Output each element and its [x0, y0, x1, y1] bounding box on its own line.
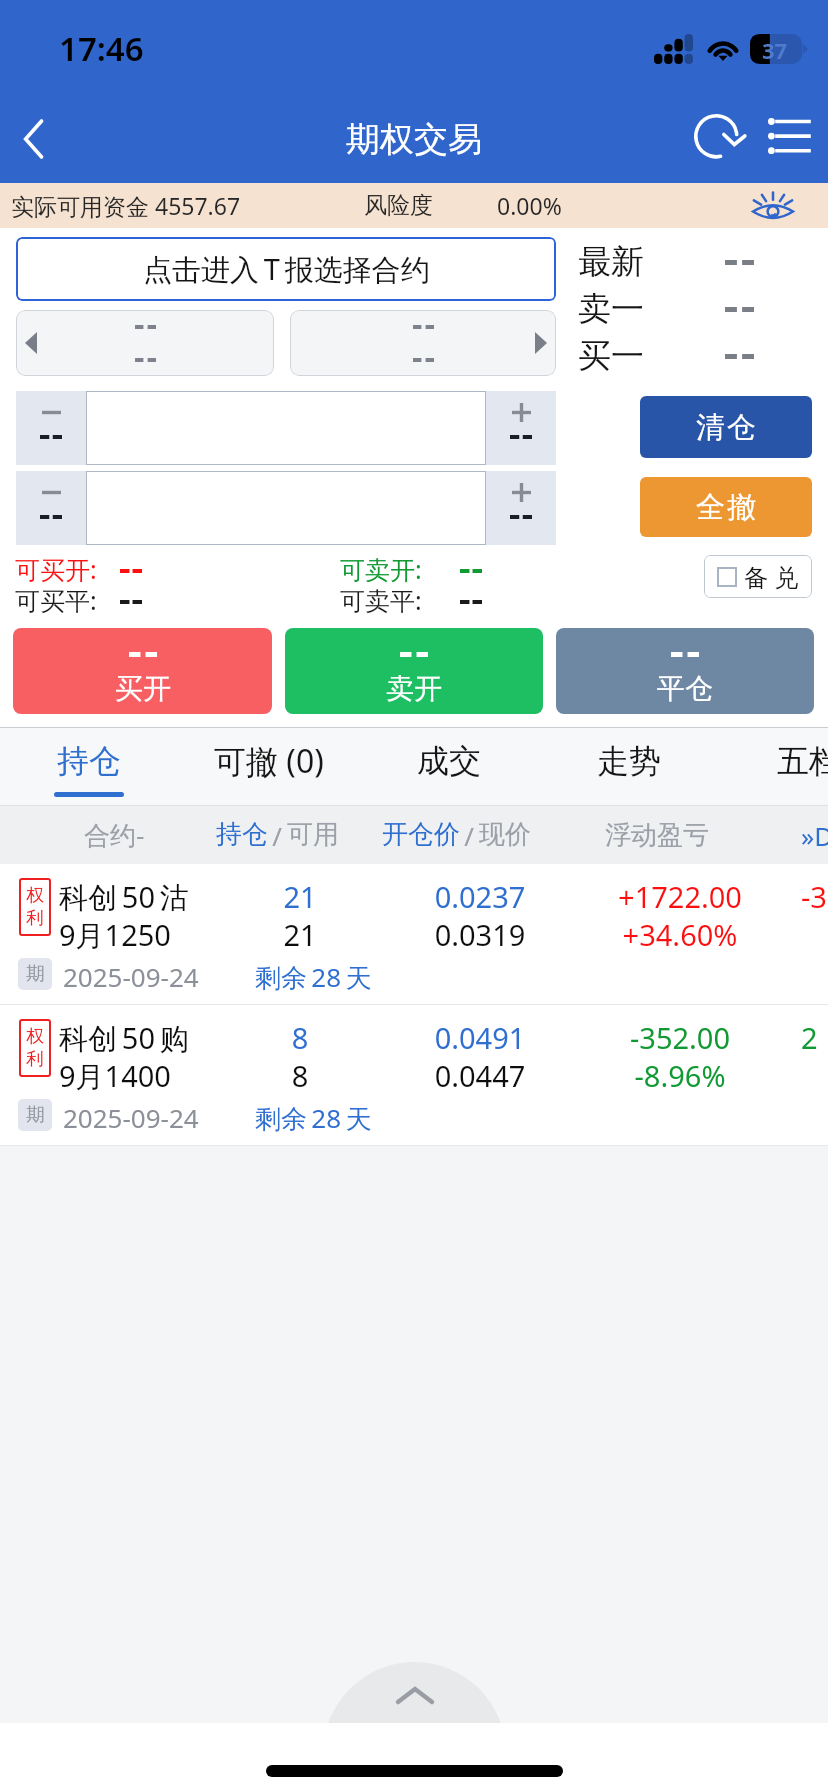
staticText: 科创 50 沽: [59, 877, 189, 917]
staticText: 0.0447: [370, 1056, 590, 1095]
button[interactable]: 平仓: [556, 628, 814, 714]
button[interactable]: Decrease: [16, 471, 86, 545]
staticText: 开仓价: [382, 818, 460, 851]
staticText: +34.60%: [570, 915, 790, 954]
button[interactable]: [16, 310, 274, 376]
staticText: 风险度: [364, 191, 433, 220]
staticText: -8.96%: [570, 1056, 790, 1095]
staticText: 买开: [115, 671, 171, 706]
staticText: 平仓: [657, 671, 713, 706]
staticText: 利: [26, 907, 44, 930]
staticText: 2025-09-24: [63, 1100, 199, 1135]
staticText: 0.0237: [370, 877, 590, 916]
button[interactable]: Expand panel: [323, 1662, 506, 1792]
button[interactable]: [86, 471, 486, 545]
staticText: 可买平:: [15, 583, 97, 617]
staticText: /: [268, 818, 287, 853]
button[interactable]: 持仓: [0, 727, 179, 806]
staticText: +1722.00: [570, 877, 790, 916]
button[interactable]: 走势: [539, 727, 719, 806]
staticText: /: [460, 818, 479, 853]
staticText: 权: [26, 884, 44, 907]
button[interactable]: 备 兑: [704, 555, 812, 598]
staticText: 全撤: [695, 489, 757, 526]
staticText: 9月1250: [59, 915, 171, 955]
staticText: 合约-: [84, 817, 145, 853]
staticText: 走势: [597, 741, 661, 781]
staticText: 0.00%: [497, 190, 562, 221]
button[interactable]: [290, 310, 556, 376]
staticText: 可买开:: [15, 552, 97, 586]
staticText: 可撤 (0): [214, 739, 324, 783]
staticText: 8: [190, 1056, 410, 1095]
staticText: 期权交易: [346, 118, 482, 161]
button[interactable]: 清仓: [640, 396, 812, 458]
staticText: 卖一: [578, 288, 644, 330]
button[interactable]: 买开: [13, 628, 272, 714]
staticText: 17:46: [59, 26, 144, 71]
staticText: 37: [762, 35, 788, 65]
button[interactable]: 卖开: [285, 628, 543, 714]
button[interactable]: [86, 391, 486, 465]
button[interactable]: 成交: [359, 727, 539, 806]
button[interactable]: Toggle balance visibility: [748, 188, 798, 226]
staticText: 五档: [777, 741, 828, 781]
button[interactable]: Increase: [486, 471, 556, 545]
staticText: 持仓: [57, 741, 121, 781]
staticText: 剩余 28 天: [255, 959, 372, 995]
button[interactable]: Back: [0, 95, 76, 183]
staticText: 21: [190, 877, 410, 916]
staticText: -352.00: [570, 1018, 790, 1057]
button[interactable]: 权: [0, 864, 828, 1005]
staticText: 9月1400: [59, 1056, 171, 1096]
staticText: 卖开: [386, 671, 442, 706]
staticText: 0.0319: [370, 915, 590, 954]
staticText: 剩余 28 天: [255, 1100, 372, 1136]
staticText: 最新: [578, 241, 644, 283]
staticText: 权: [26, 1025, 44, 1048]
staticText: 期: [26, 962, 45, 986]
staticText: 期: [26, 1103, 45, 1127]
staticText: 0.0491: [370, 1018, 590, 1057]
staticText: 浮动盈亏: [605, 819, 709, 852]
button[interactable]: 全撤: [640, 477, 812, 537]
staticText: 备 兑: [744, 560, 799, 593]
button[interactable]: 可撤 (0): [179, 727, 359, 806]
button[interactable]: Decrease: [16, 391, 86, 465]
staticText: 2025-09-24: [63, 959, 199, 994]
button[interactable]: 权: [0, 1005, 828, 1146]
button[interactable]: Menu: [752, 105, 828, 181]
button[interactable]: 点击进入 T 报选择合约: [16, 237, 556, 301]
staticText: 买一: [578, 335, 644, 377]
staticText: 科创 50 购: [59, 1018, 189, 1058]
staticText: 清仓: [695, 409, 757, 446]
staticText: 可卖平:: [340, 583, 422, 617]
button[interactable]: Increase: [486, 391, 556, 465]
staticText: 持仓: [216, 818, 268, 851]
staticText: 点击进入 T 报选择合约: [143, 249, 430, 289]
staticText: »D: [801, 818, 828, 853]
staticText: 8: [190, 1018, 410, 1057]
button[interactable]: Refresh: [684, 106, 756, 178]
staticText: 实际可用资金 4557.67: [11, 190, 241, 221]
staticText: 可卖开:: [340, 552, 422, 586]
button[interactable]: 五档: [719, 727, 828, 806]
staticText: -3: [801, 877, 827, 916]
staticText: 利: [26, 1048, 44, 1071]
staticText: 21: [190, 915, 410, 954]
staticText: 现价: [479, 818, 531, 851]
staticText: 2: [801, 1018, 818, 1057]
staticText: 成交: [417, 741, 481, 781]
staticText: 可用: [287, 818, 339, 851]
